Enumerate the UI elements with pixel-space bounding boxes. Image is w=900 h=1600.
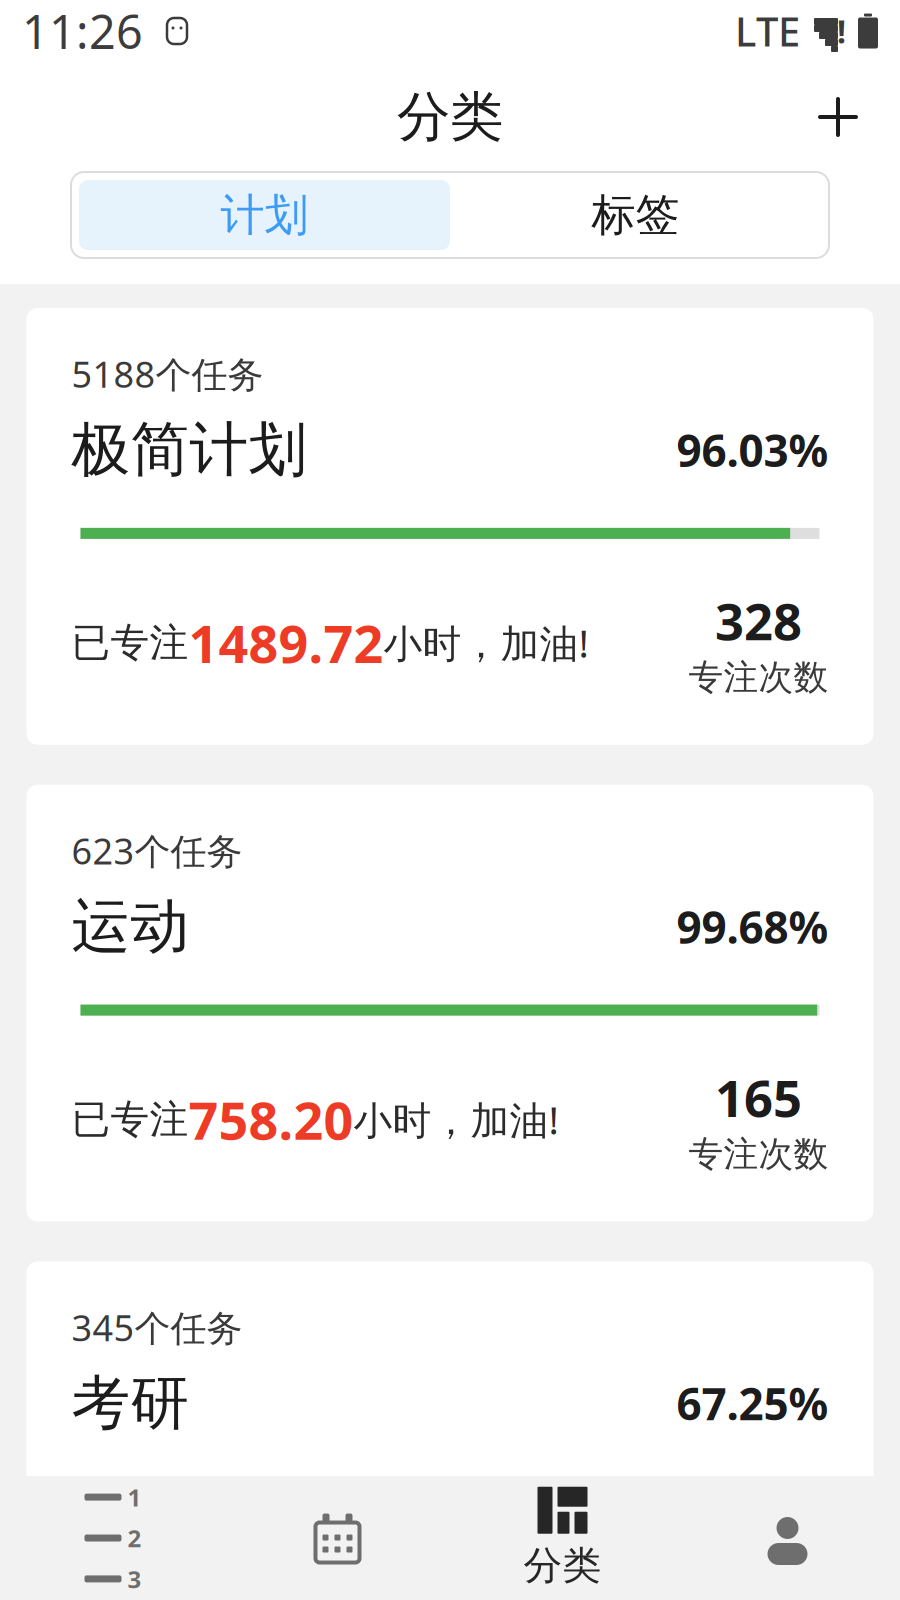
staticText: 67.25%	[676, 1374, 828, 1432]
staticText: LTE	[735, 4, 800, 57]
staticText: 已专注	[71, 619, 188, 667]
staticText: 运动	[71, 890, 189, 963]
staticText: 标签	[591, 188, 679, 242]
staticText: 专注次数	[688, 1133, 828, 1175]
staticText: 1	[127, 1481, 141, 1513]
staticText: 758.20	[188, 1085, 353, 1154]
button[interactable]: 计划	[79, 180, 450, 250]
button[interactable]: 分类	[450, 1476, 675, 1600]
button[interactable]: 我的	[675, 1476, 900, 1600]
button[interactable]: 清单	[0, 1476, 225, 1600]
staticText: 1489.72	[188, 608, 383, 677]
staticText: 345个任务	[71, 1303, 242, 1351]
button[interactable]: 标签	[450, 180, 821, 250]
staticText: 专注次数	[688, 656, 828, 699]
staticText: 3	[127, 1563, 141, 1595]
staticText: 极简计划	[71, 414, 307, 486]
staticText: 151	[715, 1540, 802, 1600]
staticText: 11:26	[22, 0, 143, 62]
staticText: !	[837, 10, 846, 52]
staticText: 小时，加油!	[353, 1094, 558, 1145]
button[interactable]: 日历	[225, 1476, 450, 1600]
staticText: 计划	[220, 188, 308, 242]
staticText: 5188个任务	[71, 350, 263, 398]
staticText: 小时，加油!	[383, 617, 588, 668]
staticText: 966.57	[188, 1562, 353, 1600]
button[interactable]: 添加	[800, 79, 876, 155]
staticText: 分类	[397, 84, 503, 150]
staticText: 考研	[71, 1367, 189, 1439]
staticText: 328	[715, 587, 802, 654]
staticText: 2	[127, 1522, 141, 1554]
staticText: 99.68%	[676, 897, 828, 956]
staticText: 小时，加油!	[353, 1571, 558, 1600]
staticText: 96.03%	[676, 421, 828, 479]
staticText: 165	[715, 1064, 802, 1131]
staticText: 已专注	[71, 1096, 188, 1143]
button[interactable]: 5188个任务	[26, 308, 873, 745]
button[interactable]: 345个任务	[26, 1261, 873, 1600]
staticText: 分类	[523, 1542, 601, 1589]
staticText: 623个任务	[71, 827, 242, 874]
button[interactable]: 623个任务	[26, 785, 873, 1221]
staticText: 已专注	[71, 1572, 188, 1600]
